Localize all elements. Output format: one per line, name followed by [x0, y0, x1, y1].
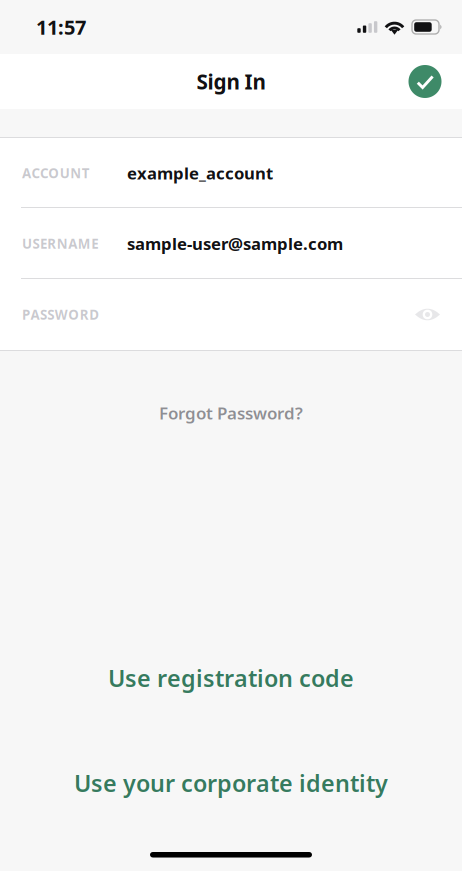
staticText: USERNAME	[22, 235, 98, 252]
button[interactable]: Forgot Password?	[111, 391, 351, 435]
staticText: Forgot Password?	[159, 401, 303, 425]
button[interactable]: Confirm	[403, 59, 447, 103]
button[interactable]: USERNAME	[0, 208, 462, 279]
button[interactable]: PASSWORD	[0, 279, 462, 350]
staticText: PASSWORD	[22, 306, 99, 323]
button[interactable]: Use your corporate identity	[0, 759, 462, 807]
staticText: example_account	[127, 162, 273, 184]
staticText: Use registration code	[108, 662, 354, 694]
staticText: ACCOUNT	[22, 164, 90, 182]
staticText: Use your corporate identity	[74, 767, 388, 799]
button[interactable]: ACCOUNT	[0, 138, 462, 208]
staticText: sample-user@sample.com	[127, 232, 343, 255]
staticText: 11:57	[36, 13, 86, 41]
button[interactable]: Use registration code	[0, 654, 462, 702]
staticText: Sign In	[196, 67, 265, 95]
